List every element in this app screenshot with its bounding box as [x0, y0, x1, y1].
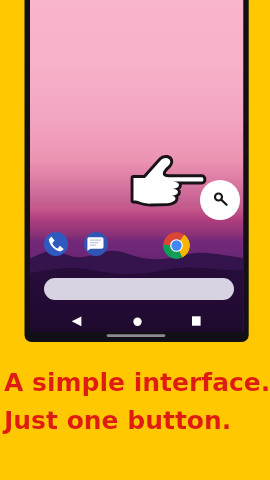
- button[interactable]: Messages: [84, 232, 108, 256]
- button[interactable]: Chrome: [163, 232, 190, 259]
- button[interactable]: Phone: [44, 232, 68, 256]
- button[interactable]: Search bar: [44, 278, 234, 300]
- button[interactable]: Back: [66, 311, 87, 332]
- button[interactable]: Recent apps: [186, 311, 207, 332]
- button[interactable]: Search: [200, 180, 240, 220]
- button[interactable]: Home: [127, 311, 148, 332]
- staticText: A simple interface.: [4, 368, 270, 397]
- staticText: Just one button.: [4, 406, 232, 435]
